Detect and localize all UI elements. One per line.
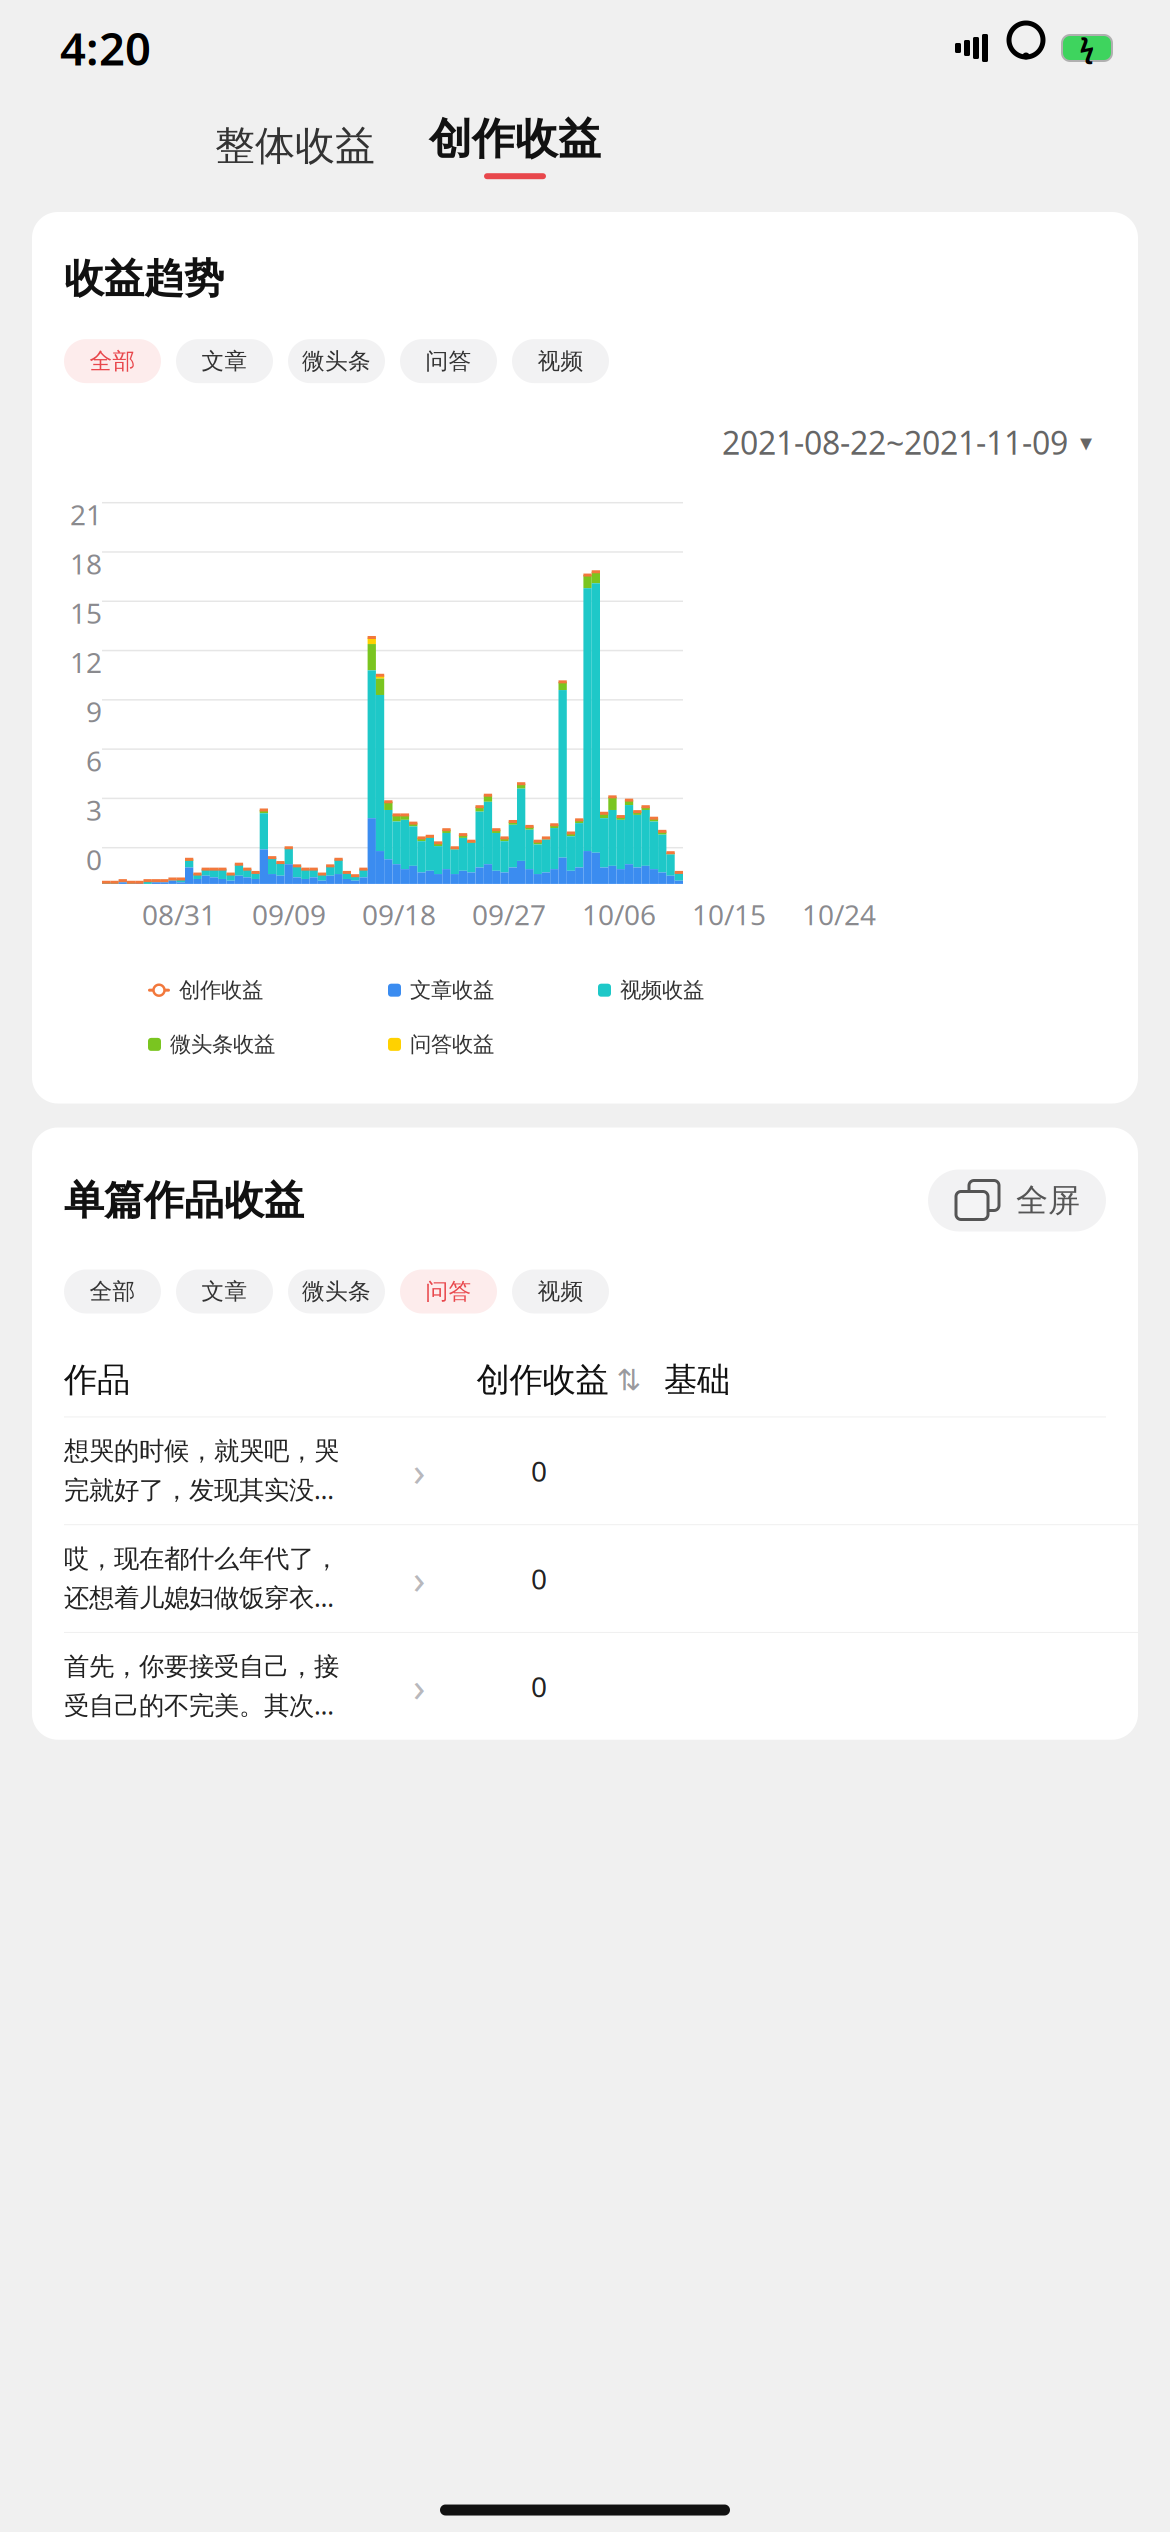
button[interactable]: 问答 xyxy=(400,1269,497,1313)
button[interactable]: 创作收益 xyxy=(420,102,610,190)
staticText: 单篇作品收益 xyxy=(64,1176,304,1225)
staticText: 文章收益 xyxy=(410,977,494,1003)
staticText: 6 xyxy=(86,742,102,779)
staticText: 作品 xyxy=(64,1359,130,1400)
staticText: ▾ xyxy=(1080,429,1092,456)
button[interactable]: 整体收益 xyxy=(200,110,390,182)
staticText: 0 xyxy=(531,1668,547,1705)
staticText: 09/27 xyxy=(472,896,546,933)
staticText: 0 xyxy=(86,841,102,878)
staticText: 基础 xyxy=(664,1359,730,1400)
button[interactable]: 全屏 xyxy=(928,1169,1106,1231)
staticText: 创作收益 xyxy=(476,1359,608,1400)
staticText: 9 xyxy=(86,693,102,730)
staticText: 09/09 xyxy=(252,896,326,933)
button[interactable]: 想哭的时候，就哭吧，哭 xyxy=(64,1417,1138,1525)
staticText: ⇅ xyxy=(616,1363,641,1397)
button[interactable]: 视频 xyxy=(512,339,609,383)
staticText: 15 xyxy=(70,594,102,631)
staticText: 微头条 xyxy=(302,347,371,375)
staticText: 哎，现在都什么年代了， xyxy=(64,1543,339,1574)
staticText: 文章 xyxy=(201,1278,247,1305)
staticText: 10/15 xyxy=(692,896,766,933)
button[interactable]: 全部 xyxy=(64,339,161,383)
staticText: 视频 xyxy=(537,347,583,375)
button[interactable]: 全部 xyxy=(64,1269,161,1313)
staticText: › xyxy=(413,1444,425,1497)
button[interactable]: 首先，你要接受自己，接 xyxy=(64,1633,1138,1740)
staticText: ϟ xyxy=(1079,30,1094,66)
button[interactable]: 2021-08-22~2021-11-09 xyxy=(722,421,1092,464)
staticText: 整体收益 xyxy=(215,121,375,170)
staticText: 视频 xyxy=(537,1278,583,1305)
staticText: 10/06 xyxy=(582,896,656,933)
staticText: 微头条收益 xyxy=(170,1031,275,1057)
staticText: 视频收益 xyxy=(620,977,704,1003)
staticText: 问答收益 xyxy=(410,1031,494,1057)
button[interactable]: 视频 xyxy=(512,1269,609,1313)
staticText: 问答 xyxy=(425,1278,471,1305)
staticText: 09/18 xyxy=(362,896,436,933)
button[interactable]: 微头条 xyxy=(288,339,385,383)
staticText: 还想着儿媳妇做饭穿衣… xyxy=(64,1580,334,1614)
staticText: 创作收益 xyxy=(429,113,601,165)
staticText: 10/24 xyxy=(802,896,876,933)
staticText: 21 xyxy=(70,496,102,533)
staticText: 0 xyxy=(531,1452,547,1489)
staticText: 想哭的时候，就哭吧，哭 xyxy=(64,1435,339,1466)
staticText: 4:20 xyxy=(60,18,151,78)
staticText: › xyxy=(413,1552,425,1605)
staticText: 12 xyxy=(70,643,102,681)
button[interactable]: 微头条 xyxy=(288,1269,385,1313)
staticText: 08/31 xyxy=(142,896,216,933)
staticText: 0 xyxy=(531,1560,547,1597)
staticText: 2021-08-22~2021-11-09 xyxy=(722,421,1068,464)
staticText: 创作收益 xyxy=(179,977,263,1003)
button[interactable]: 问答 xyxy=(400,339,497,383)
staticText: 完就好了，发现其实没… xyxy=(64,1473,334,1506)
staticText: 首先，你要接受自己，接 xyxy=(64,1651,339,1682)
button[interactable]: 文章 xyxy=(176,339,273,383)
staticText: › xyxy=(413,1660,425,1713)
staticText: 受自己的不完美。其次… xyxy=(64,1688,334,1722)
button[interactable]: 哎，现在都什么年代了， xyxy=(64,1525,1138,1633)
staticText: 18 xyxy=(70,545,102,582)
staticText: 全屏 xyxy=(1016,1181,1080,1220)
staticText: 问答 xyxy=(425,347,471,375)
staticText: 全部 xyxy=(89,1278,135,1305)
staticText: 文章 xyxy=(201,347,247,375)
button[interactable]: 文章 xyxy=(176,1269,273,1313)
staticText: 微头条 xyxy=(302,1278,371,1305)
staticText: 全部 xyxy=(89,347,135,375)
staticText: 收益趋势 xyxy=(64,254,224,303)
staticText: 3 xyxy=(86,791,102,829)
